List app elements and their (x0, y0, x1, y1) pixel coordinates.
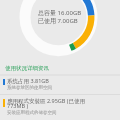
staticText: 总容量 16.00GB (38, 9, 82, 17)
staticText: 使用状况详细资讯 (5, 65, 49, 72)
staticText: 應用程式安裝區 2.95GB (已使用 773MB ) (7, 97, 86, 110)
staticText: 安装应用程式的储存空间 (7, 110, 57, 116)
staticText: 系统存放区的使用空间 (7, 85, 52, 91)
button[interactable]: 系统占用 3.81GB (0, 76, 120, 95)
button[interactable]: 使用状况详细资讯 (0, 62, 120, 74)
button[interactable]: 應用程式安裝區 2.95GB (已使用 773MB ) (0, 96, 120, 115)
staticText: 系统占用 3.81GB (7, 77, 49, 85)
staticText: 已使用 7.00GB (38, 17, 78, 25)
